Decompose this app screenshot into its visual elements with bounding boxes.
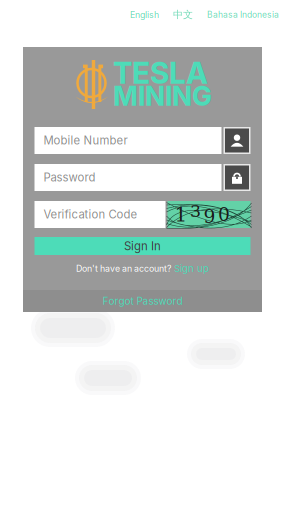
- staticText: Forgot Password: [102, 295, 182, 307]
- staticText: 中文: [173, 8, 193, 21]
- button[interactable]: Bahasa Indonesia: [207, 9, 279, 20]
- staticText: Sign up: [174, 263, 209, 274]
- button[interactable]: Forgot Password: [23, 290, 262, 312]
- button[interactable]: 中文: [173, 8, 193, 21]
- staticText: 0: [218, 204, 230, 225]
- staticText: TESLA: [113, 55, 208, 91]
- button[interactable]: English: [130, 9, 159, 20]
- button[interactable]: Account: [223, 127, 250, 154]
- staticText: Sign In: [124, 239, 161, 253]
- staticText: 3: [190, 201, 201, 221]
- staticText: English: [130, 9, 159, 20]
- button[interactable]: Sign In: [34, 237, 250, 255]
- staticText: 1: [174, 203, 187, 226]
- staticText: Mobile Number: [43, 134, 127, 147]
- button[interactable]: Sign up: [174, 263, 209, 274]
- button[interactable]: Show password: [223, 164, 250, 191]
- button[interactable]: Refresh verification code: [167, 201, 250, 228]
- staticText: Don't have an account?: [76, 263, 171, 274]
- staticText: Password: [43, 171, 95, 184]
- staticText: 9: [203, 206, 215, 227]
- staticText: Verification Code: [43, 208, 137, 221]
- staticText: MINING: [113, 80, 212, 112]
- staticText: Bahasa Indonesia: [207, 9, 279, 20]
